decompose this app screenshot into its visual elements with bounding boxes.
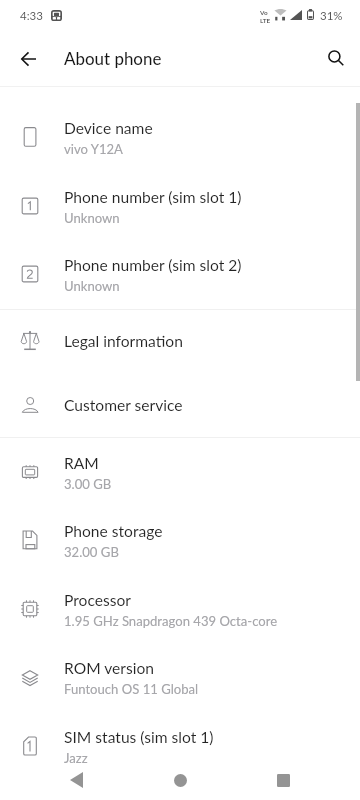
staticText: 32.00 GB: [64, 544, 119, 560]
staticText: Phone number (sim slot 1): [64, 188, 242, 207]
staticText: Legal information: [64, 332, 183, 351]
button[interactable]: SIM status (sim slot 1): [0, 712, 360, 781]
button[interactable]: Legal information: [0, 310, 360, 374]
button[interactable]: Back: [6, 37, 48, 79]
button[interactable]: Phone storage: [0, 506, 360, 575]
staticText: Funtouch OS 11 Global: [64, 681, 199, 697]
staticText: About phone: [64, 48, 162, 68]
staticText: Unknown: [64, 210, 120, 226]
button[interactable]: Home: [156, 760, 204, 800]
button[interactable]: Customer service: [0, 374, 360, 437]
staticText: Vo: [260, 9, 268, 17]
staticText: Phone number (sim slot 2): [64, 256, 242, 275]
staticText: RAM: [64, 454, 99, 473]
button[interactable]: Phone number (sim slot 1): [0, 172, 360, 240]
staticText: 3.00 GB: [64, 476, 112, 492]
staticText: ROM version: [64, 659, 154, 678]
button[interactable]: Device name: [0, 103, 360, 172]
staticText: SIM status (sim slot 1): [64, 728, 214, 747]
staticText: vivo Y12A: [64, 141, 123, 157]
staticText: Unknown: [64, 278, 120, 294]
button[interactable]: Phone number (sim slot 2): [0, 240, 360, 309]
staticText: Device name: [64, 119, 153, 138]
button[interactable]: RAM: [0, 438, 360, 506]
button[interactable]: Recents: [259, 760, 307, 800]
button[interactable]: Processor: [0, 575, 360, 643]
button[interactable]: Search: [316, 39, 354, 77]
staticText: 1.95 GHz Snapdragon 439 Octa-core: [64, 613, 278, 629]
staticText: Processor: [64, 591, 131, 610]
button[interactable]: ROM version: [0, 643, 360, 712]
staticText: 31%: [320, 9, 343, 23]
staticText: LTE: [260, 17, 271, 25]
staticText: 4:33: [20, 9, 43, 23]
staticText: Phone storage: [64, 522, 163, 541]
staticText: Jazz: [64, 750, 88, 766]
button[interactable]: Back: [52, 760, 100, 800]
staticText: Customer service: [64, 396, 183, 415]
